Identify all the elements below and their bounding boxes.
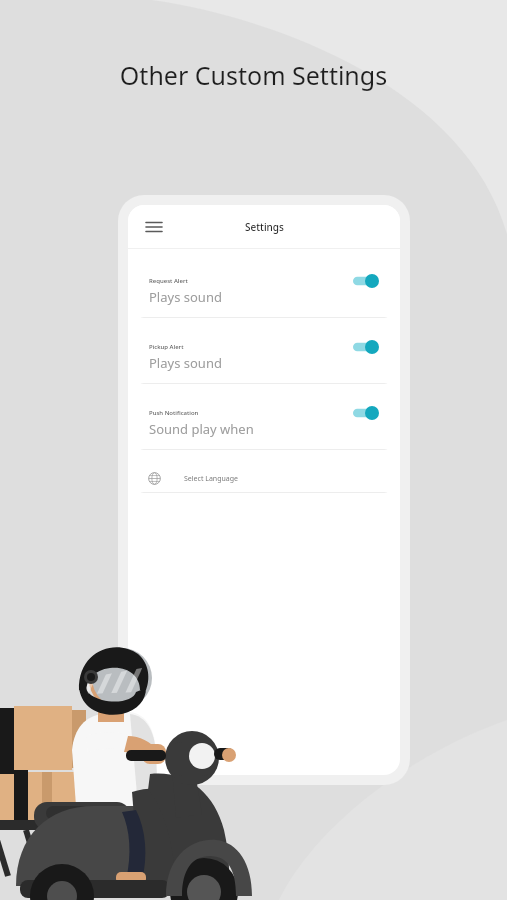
staticText: Select Language [184, 474, 238, 484]
button[interactable]: Pickup Alert toggle, on [351, 338, 381, 356]
staticText: Push Notification [149, 409, 199, 417]
staticText: Plays sound [149, 288, 222, 306]
staticText: Sound play when [149, 420, 254, 438]
staticText: Pickup Alert [149, 343, 184, 351]
staticText: Request Alert [149, 277, 188, 285]
staticText: Other Custom Settings [0, 58, 507, 92]
button[interactable]: Push Notification toggle, on [351, 404, 381, 422]
button[interactable]: Request Alert toggle, on [351, 272, 381, 290]
button[interactable]: Pickup Alert [137, 331, 391, 384]
button[interactable]: Select Language [137, 463, 391, 493]
button[interactable]: Push Notification [137, 397, 391, 450]
button[interactable]: Open navigation menu [140, 213, 168, 241]
staticText: Settings [245, 220, 284, 234]
button[interactable]: Request Alert [137, 265, 391, 318]
staticText: Plays sound [149, 354, 222, 372]
